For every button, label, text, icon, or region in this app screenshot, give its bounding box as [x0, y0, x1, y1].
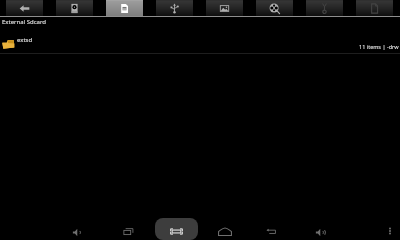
button[interactable]: Documents [356, 0, 393, 16]
button[interactable]: Screenshot [155, 218, 198, 240]
button[interactable]: Recent apps [107, 218, 150, 240]
button[interactable]: Back [250, 218, 293, 240]
button[interactable]: Back [6, 0, 43, 16]
button[interactable]: Home [203, 218, 246, 240]
staticText: extsd [17, 36, 33, 44]
button[interactable]: USB storage [156, 0, 193, 16]
button[interactable]: Images [206, 0, 243, 16]
staticText: External Sdcard [2, 18, 46, 26]
button[interactable]: SD card [106, 0, 143, 16]
button[interactable]: More options [382, 219, 398, 240]
button[interactable]: Music [306, 0, 343, 16]
button[interactable]: Internal storage [56, 0, 93, 16]
button[interactable]: Volume down [56, 218, 99, 240]
button[interactable]: Videos [256, 0, 293, 16]
button[interactable]: Volume up [299, 218, 342, 240]
staticText: 11 items | -drw [359, 43, 399, 50]
button[interactable]: extsd [0, 34, 400, 53]
